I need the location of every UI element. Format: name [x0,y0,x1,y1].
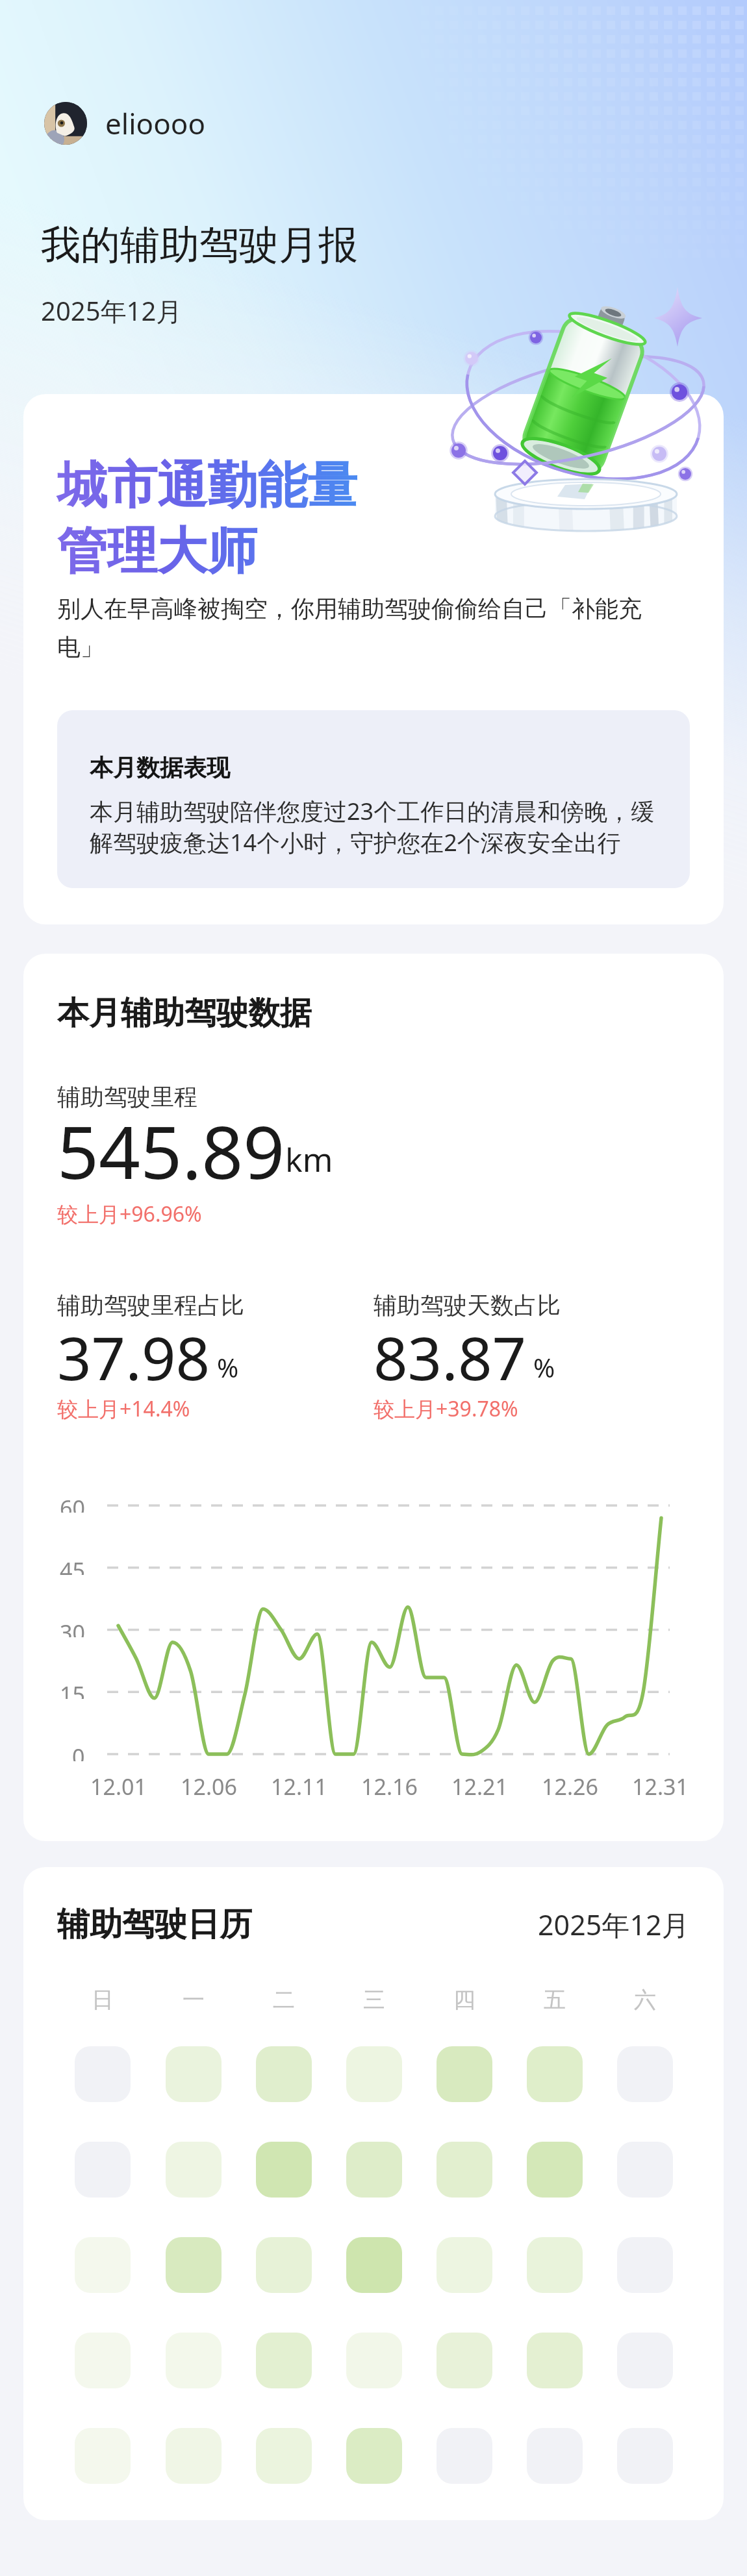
button[interactable] [166,2046,222,2102]
button[interactable]: Profile photo [44,102,205,145]
staticText: 较上月+14.4% [57,1394,190,1423]
staticText: 12.01 [90,1772,147,1800]
button[interactable] [75,2142,131,2198]
staticText: 12.11 [271,1772,327,1800]
button[interactable] [75,2428,131,2484]
staticText: 12.31 [632,1772,689,1800]
staticText: % [533,1350,555,1385]
staticText: 我的辅助驾驶月报 [41,220,358,270]
staticText: 45 [60,1555,85,1575]
staticText: 30 [60,1618,85,1637]
staticText: 别人在早高峰被掏空，你用辅助驾驶偷偷给自己「补能充电」 [57,594,674,662]
button[interactable] [346,2333,402,2388]
button[interactable] [527,2428,583,2484]
button[interactable] [256,2333,312,2388]
button[interactable] [437,2142,492,2198]
button[interactable] [437,2046,492,2102]
staticText: 辅助驾驶里程 [57,1082,197,1111]
button[interactable] [346,2142,402,2198]
button[interactable] [346,2428,402,2484]
staticText: 日 [92,1986,114,2014]
staticText: 较上月+39.78% [373,1394,518,1423]
button[interactable] [75,2237,131,2293]
staticText: 本月辅助驾驶数据 [57,993,312,1034]
staticText: 545.89 [57,1101,285,1189]
staticText: 辅助驾驶天数占比 [373,1291,561,1320]
button[interactable] [256,2142,312,2198]
button[interactable] [166,2142,222,2198]
button[interactable] [617,2046,673,2102]
staticText: 六 [634,1986,656,2014]
button[interactable] [527,2237,583,2293]
button[interactable] [256,2046,312,2102]
staticText: % [217,1350,239,1385]
staticText: 37.98 [57,1317,210,1391]
staticText: 四 [453,1986,475,2014]
staticText: 2025年12月 [41,293,183,328]
button[interactable] [617,2142,673,2198]
staticText: 12.06 [181,1772,237,1800]
staticText: 二 [273,1986,295,2014]
staticText: elioooo [105,104,205,143]
button[interactable] [437,2237,492,2293]
staticText: 较上月+96.96% [57,1200,202,1228]
staticText: 城市通勤能量 [57,454,357,517]
staticText: 12.21 [451,1772,508,1800]
button[interactable] [256,2237,312,2293]
staticText: 60 [60,1493,85,1513]
staticText: 12.16 [361,1772,418,1800]
button[interactable] [75,2333,131,2388]
staticText: 一 [183,1986,205,2014]
button[interactable] [346,2237,402,2293]
staticText: 辅助驾驶日历 [57,1904,252,1945]
staticText: 三 [363,1986,385,2014]
staticText: 管理大师 [57,520,257,583]
button[interactable] [527,2046,583,2102]
button[interactable] [166,2428,222,2484]
button[interactable] [256,2428,312,2484]
button[interactable] [437,2428,492,2484]
staticText: 83.87 [373,1317,527,1391]
staticText: 12.26 [542,1772,598,1800]
staticText: 辅助驾驶里程占比 [57,1291,244,1320]
button[interactable] [617,2428,673,2484]
button[interactable] [166,2237,222,2293]
staticText: 本月辅助驾驶陪伴您度过23个工作日的清晨和傍晚，缓解驾驶疲惫达14个小时，守护您… [90,795,670,858]
staticText: 本月数据表现 [90,753,230,782]
button[interactable] [346,2046,402,2102]
button[interactable] [527,2142,583,2198]
staticText: km [285,1137,333,1182]
button[interactable] [617,2237,673,2293]
button[interactable] [617,2333,673,2388]
staticText: 15 [60,1679,85,1699]
staticText: 2025年12月 [538,1905,690,1944]
button[interactable] [437,2333,492,2388]
staticText: 五 [544,1986,566,2014]
button[interactable] [75,2046,131,2102]
staticText: 0 [72,1742,85,1761]
button[interactable] [166,2333,222,2388]
other: Profile photo [44,102,87,145]
button[interactable] [527,2333,583,2388]
